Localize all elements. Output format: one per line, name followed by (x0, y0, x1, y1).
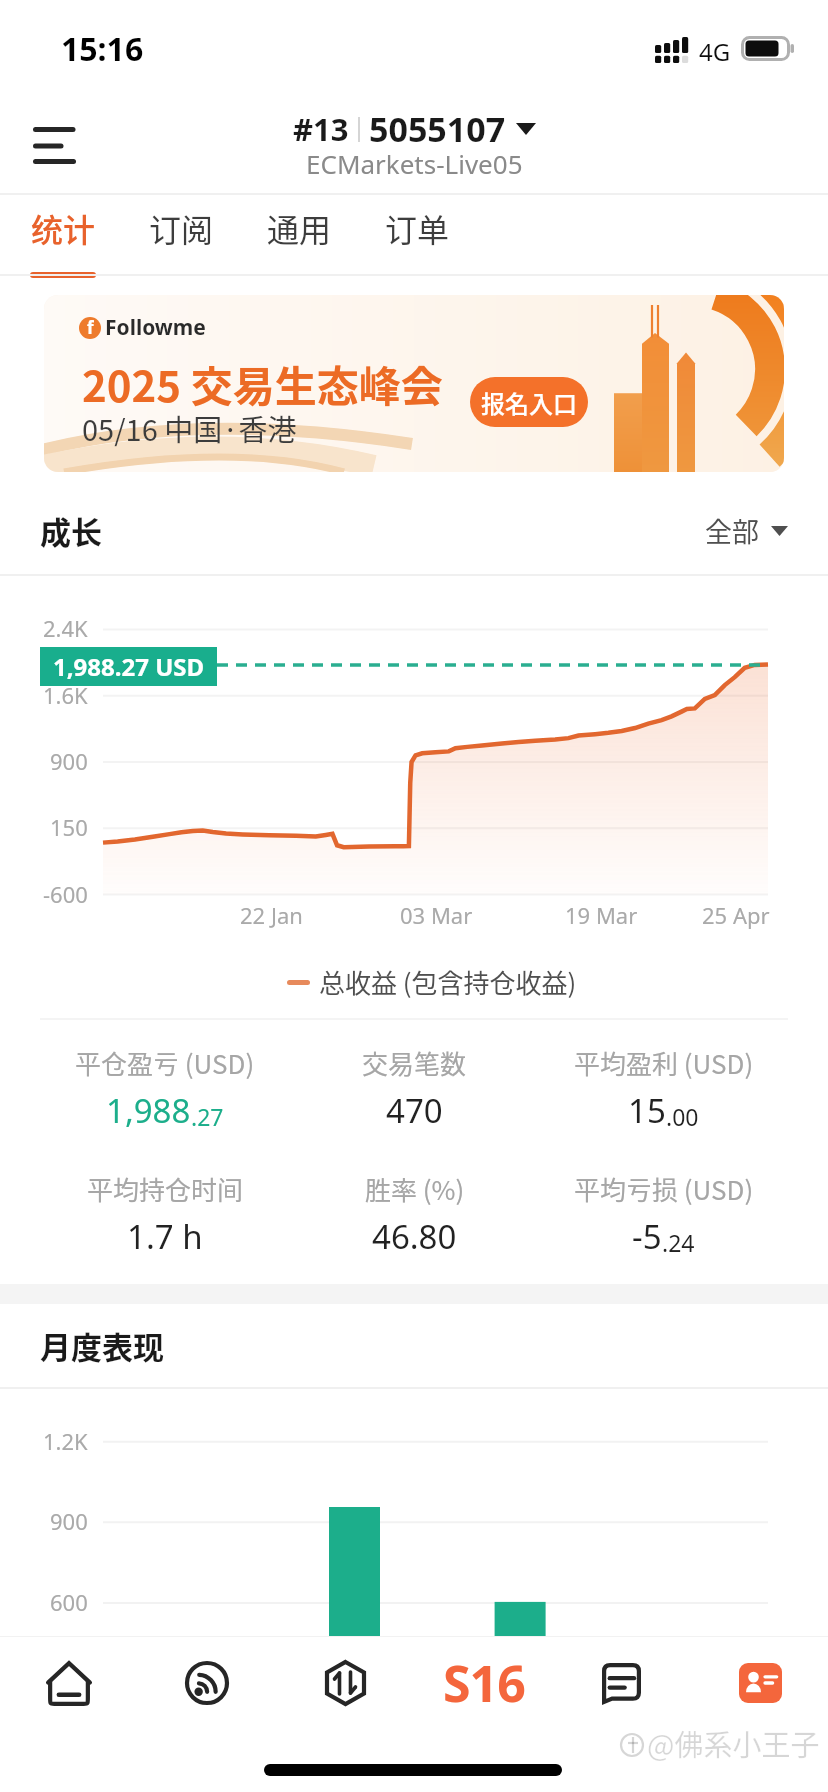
staticText: f (87, 317, 94, 338)
staticText: 470 (386, 1088, 443, 1133)
staticText: S16 (443, 1649, 525, 1717)
staticText: 900 (50, 746, 88, 776)
staticText: 25 Apr (702, 900, 770, 930)
staticText: #13 (293, 108, 349, 150)
staticText: 19 Mar (565, 900, 638, 930)
button[interactable]: 通用 (240, 196, 358, 274)
button[interactable]: Feed (147, 1636, 267, 1728)
staticText: 总收益 (包含持仓收益) (319, 963, 577, 1001)
staticText: 平仓盈亏 (USD) (75, 1044, 255, 1082)
staticText: 5055107 (369, 106, 506, 152)
staticText: 2.4K (43, 613, 88, 643)
button[interactable]: Messages (561, 1636, 681, 1728)
staticText: 订单 (385, 205, 450, 251)
staticText: Followme (105, 313, 206, 342)
staticText: 900 (50, 1506, 88, 1536)
staticText: 1.7 h (127, 1214, 203, 1259)
staticText: 平均亏损 (USD) (574, 1170, 754, 1208)
button[interactable]: Activity S16 (424, 1636, 544, 1728)
staticText: 交易笔数 (362, 1044, 467, 1082)
staticText: 统计 (31, 205, 96, 251)
staticText: 46.80 (372, 1214, 457, 1259)
staticText: 2025 交易生态峰会 (82, 353, 443, 414)
staticText: 150 (50, 812, 88, 842)
button[interactable]: 报名入口 (470, 377, 588, 427)
staticText: 平均持仓时间 (87, 1170, 244, 1208)
staticText: 成长 (40, 508, 102, 553)
button[interactable]: 订单 (358, 196, 476, 274)
button[interactable]: 订阅 (122, 196, 240, 274)
staticText: 15:16 (61, 27, 144, 71)
staticText: 03 Mar (400, 900, 473, 930)
button[interactable]: 全部 (705, 511, 788, 550)
staticText: -5 (632, 1214, 662, 1259)
staticText: .00 (666, 1101, 699, 1132)
staticText: 1,988 (106, 1088, 191, 1133)
button[interactable]: 统计 (4, 196, 122, 274)
staticText: 全部 (705, 511, 759, 550)
staticText: 05/16 中国·香港 (82, 407, 297, 449)
staticText: 月度表现 (40, 1323, 164, 1368)
staticText: 15 (628, 1088, 666, 1133)
button[interactable]: Trade (285, 1636, 405, 1728)
button[interactable]: Home (9, 1636, 129, 1728)
staticText: 平均盈利 (USD) (574, 1044, 754, 1082)
staticText: .27 (191, 1101, 224, 1132)
staticText: 胜率 (%) (365, 1170, 465, 1208)
staticText: @佛系小王子 (647, 1722, 820, 1764)
staticText: -600 (43, 879, 88, 909)
staticText: 报名入口 (481, 385, 577, 420)
staticText: 通用 (267, 205, 332, 251)
staticText: ECMarkets-Live05 (306, 146, 523, 181)
staticText: 22 Jan (240, 900, 303, 930)
button[interactable]: Menu (14, 109, 93, 181)
button[interactable]: f (44, 295, 784, 472)
staticText: 4G (699, 35, 731, 68)
staticText: 1.2K (43, 1426, 88, 1456)
staticText: 600 (50, 1587, 88, 1617)
staticText: 订阅 (149, 205, 214, 251)
button[interactable]: Profile (700, 1636, 820, 1728)
staticText: 1,988.27 USD (53, 650, 205, 683)
staticText: .24 (662, 1227, 695, 1258)
staticText: 1.6K (43, 680, 88, 710)
